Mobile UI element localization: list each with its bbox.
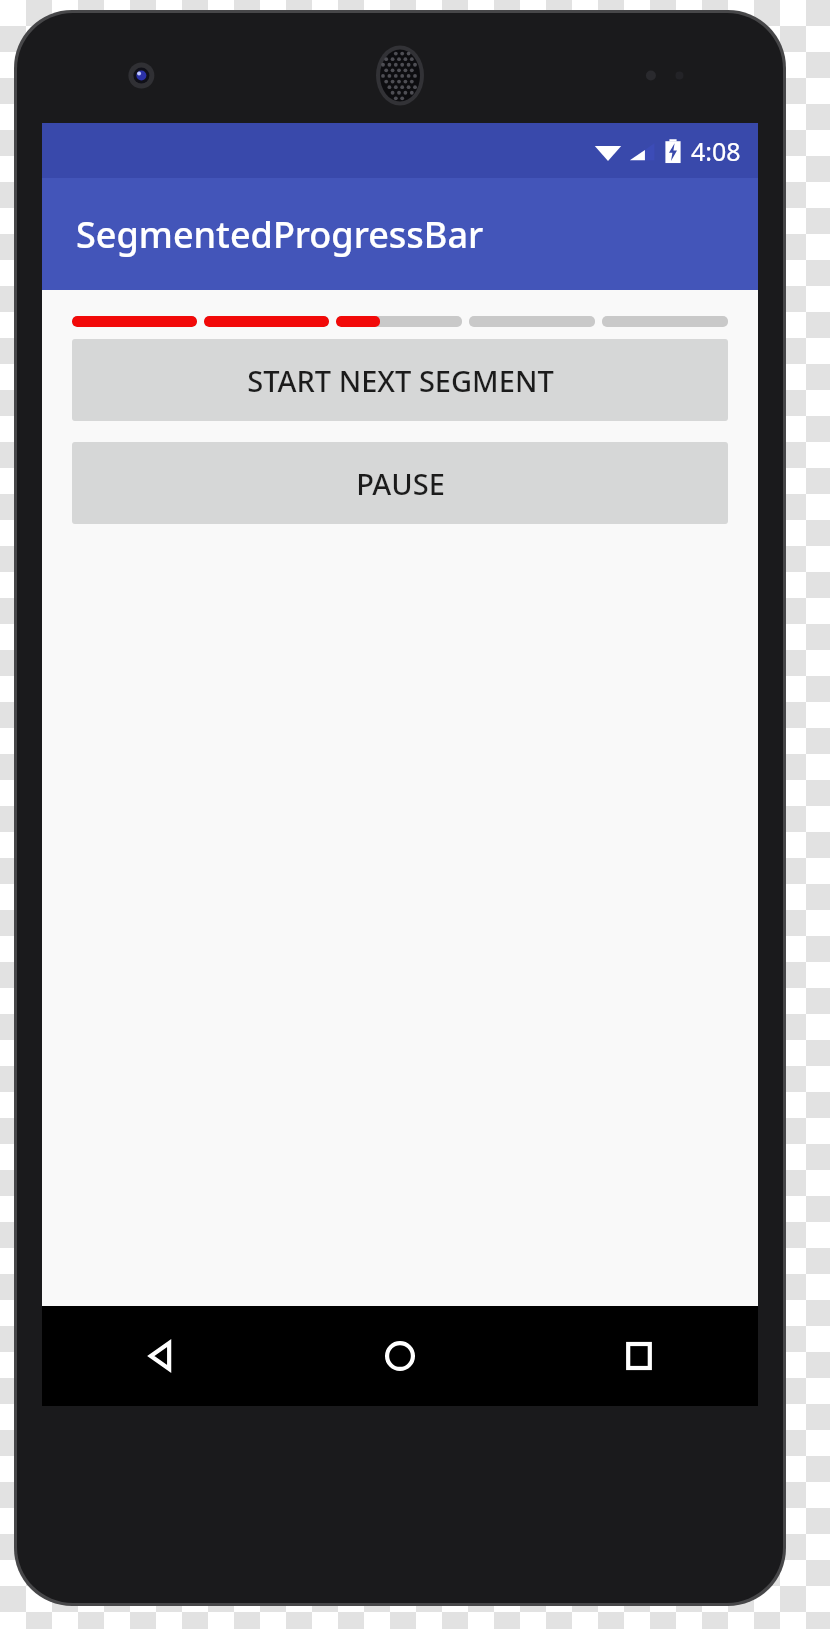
staticText: SegmentedProgressBar [76,210,484,259]
staticText: START NEXT SEGMENT [247,361,554,400]
staticText: 4:08 [691,134,741,168]
staticText: PAUSE [356,464,445,503]
button[interactable]: Back [42,1306,280,1406]
button[interactable]: START NEXT SEGMENT [72,339,728,421]
button[interactable]: PAUSE [72,442,728,524]
button[interactable]: Recent apps [519,1306,758,1406]
button[interactable]: Home [280,1306,519,1406]
